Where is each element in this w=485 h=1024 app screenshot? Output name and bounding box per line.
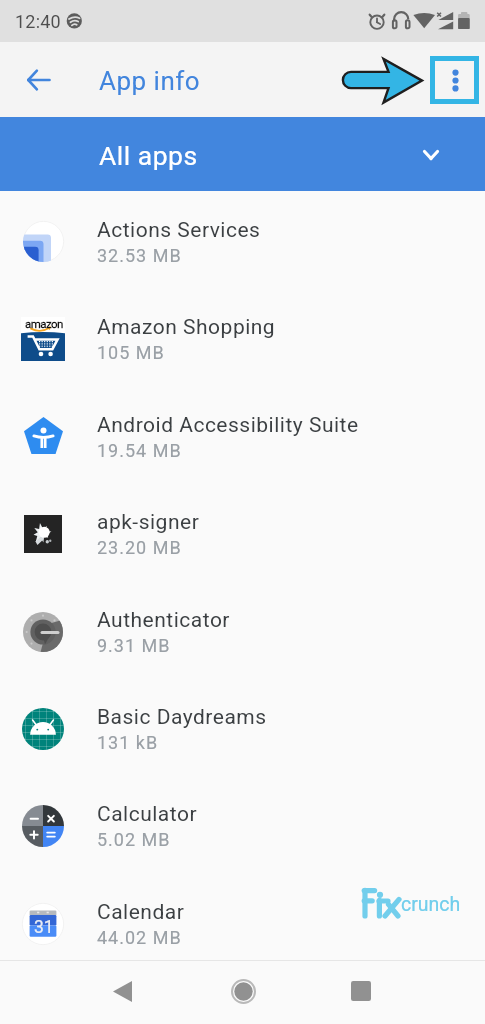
button[interactable]: amazon (0, 290, 485, 387)
staticText: Basic Daydreams (97, 705, 267, 730)
staticText: App info (99, 66, 201, 96)
staticText: 23.20 MB (97, 537, 182, 558)
staticText: 5.02 MB (97, 829, 171, 850)
staticText: 19.54 MB (97, 440, 182, 461)
button[interactable]: apk-signer (0, 485, 485, 582)
staticText: 131 kB (97, 732, 159, 753)
button[interactable]: 31 (0, 875, 485, 972)
button[interactable]: Back (98, 967, 146, 1015)
staticText: Amazon Shopping (97, 315, 276, 340)
button[interactable]: Calculator (0, 777, 485, 874)
staticText: amazon (25, 317, 63, 330)
staticText: 9.31 MB (97, 635, 171, 656)
staticText: apk-signer (97, 510, 200, 535)
staticText: Authenticator (97, 608, 230, 633)
staticText: 105 MB (97, 342, 165, 363)
staticText: 12:40 (15, 11, 61, 32)
staticText: Actions Services (97, 218, 261, 243)
staticText: All apps (99, 140, 198, 171)
staticText: 44.02 MB (97, 927, 182, 948)
button[interactable]: More options (430, 56, 479, 104)
button[interactable]: All apps (0, 117, 485, 191)
staticText: 32.53 MB (97, 245, 182, 266)
staticText: crunch (401, 893, 461, 916)
staticText: 31 (34, 917, 54, 938)
button[interactable]: Android Accessibility Suite (0, 388, 485, 485)
button[interactable]: Navigate up (14, 55, 63, 104)
button[interactable]: Recent apps (337, 967, 385, 1015)
button[interactable]: Actions Services (0, 193, 485, 290)
staticText: Android Accessibility Suite (97, 413, 359, 438)
button[interactable]: Authenticator (0, 583, 485, 680)
button[interactable]: Basic Daydreams (0, 680, 485, 777)
button[interactable]: Home (219, 967, 267, 1015)
staticText: Calendar (97, 900, 185, 925)
staticText: Calculator (97, 802, 198, 827)
